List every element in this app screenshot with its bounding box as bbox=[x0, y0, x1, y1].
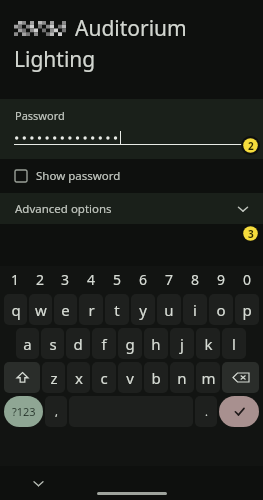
button[interactable]: Backspace bbox=[222, 362, 259, 393]
button[interactable]: 9 bbox=[208, 266, 234, 292]
button[interactable]: Enter bbox=[219, 396, 259, 427]
button[interactable]: 7 bbox=[156, 266, 182, 292]
staticText: r bbox=[88, 300, 95, 320]
staticText: e bbox=[61, 300, 70, 320]
button[interactable]: n bbox=[170, 362, 194, 393]
button[interactable]: Hide keyboard bbox=[30, 475, 46, 491]
button[interactable]: u bbox=[157, 294, 181, 325]
button[interactable]: 6 bbox=[130, 266, 156, 292]
button[interactable]: g bbox=[118, 328, 142, 359]
staticText: s bbox=[49, 334, 57, 354]
staticText: t bbox=[114, 300, 120, 320]
button[interactable]: 4 bbox=[78, 266, 104, 292]
staticText: m bbox=[201, 368, 216, 388]
staticText: x bbox=[75, 368, 83, 388]
button[interactable]: w bbox=[29, 294, 52, 325]
button[interactable]: t bbox=[105, 294, 129, 325]
button[interactable]: c bbox=[92, 362, 116, 393]
button[interactable]: k bbox=[196, 328, 220, 359]
staticText: g bbox=[125, 334, 135, 354]
staticText: q bbox=[11, 300, 21, 320]
button[interactable]: 1 bbox=[3, 266, 28, 292]
staticText: Advanced options bbox=[15, 201, 112, 217]
staticText: Show password bbox=[36, 168, 121, 184]
staticText: n bbox=[177, 368, 187, 388]
button[interactable]: r bbox=[79, 294, 103, 325]
staticText: Password bbox=[15, 108, 65, 123]
staticText: a bbox=[23, 334, 32, 354]
staticText: . bbox=[205, 404, 208, 419]
button[interactable]: x bbox=[67, 362, 90, 393]
staticText: p bbox=[242, 300, 252, 320]
button[interactable]: 2 bbox=[28, 266, 53, 292]
staticText: 5 bbox=[113, 270, 122, 289]
staticText: o bbox=[216, 300, 226, 320]
button[interactable]: Advanced options bbox=[0, 193, 263, 224]
staticText: h bbox=[151, 334, 161, 354]
staticText: Auditorium bbox=[75, 14, 187, 43]
staticText: , bbox=[55, 404, 58, 419]
staticText: Lighting bbox=[14, 45, 96, 74]
staticText: v bbox=[126, 368, 134, 388]
button[interactable]: s bbox=[41, 328, 64, 359]
staticText: 4 bbox=[87, 270, 96, 289]
button[interactable]: d bbox=[66, 328, 90, 359]
button[interactable]: 5 bbox=[104, 266, 130, 292]
staticText: i bbox=[193, 300, 197, 320]
button[interactable]: q bbox=[4, 294, 27, 325]
staticText: f bbox=[101, 334, 107, 354]
button[interactable]: a bbox=[16, 328, 39, 359]
staticText: 3 bbox=[248, 227, 254, 241]
button[interactable]: Show password bbox=[0, 159, 263, 193]
button[interactable]: y bbox=[131, 294, 155, 325]
button[interactable]: . bbox=[195, 396, 217, 427]
staticText: l bbox=[232, 334, 236, 354]
staticText: j bbox=[180, 334, 184, 354]
button[interactable]: j bbox=[170, 328, 194, 359]
staticText: c bbox=[100, 368, 108, 388]
staticText: 7 bbox=[165, 270, 174, 289]
button[interactable]: Shift bbox=[4, 362, 40, 393]
button[interactable]: v bbox=[118, 362, 142, 393]
staticText: 3 bbox=[61, 270, 70, 289]
button[interactable]: l bbox=[222, 328, 246, 359]
staticText: 2 bbox=[248, 139, 254, 153]
staticText: 8 bbox=[191, 270, 200, 289]
button[interactable]: b bbox=[144, 362, 168, 393]
button[interactable]: h bbox=[144, 328, 168, 359]
button[interactable]: e bbox=[54, 294, 77, 325]
staticText: 2 bbox=[36, 270, 45, 289]
button[interactable]: f bbox=[92, 328, 116, 359]
staticText: y bbox=[139, 300, 147, 320]
button[interactable]: 3 bbox=[53, 266, 78, 292]
staticText: 1 bbox=[11, 270, 20, 289]
button[interactable]: 0 bbox=[234, 266, 260, 292]
button[interactable]: , bbox=[45, 396, 67, 427]
button[interactable]: m bbox=[196, 362, 220, 393]
staticText: d bbox=[73, 334, 83, 354]
staticText: 0 bbox=[243, 270, 252, 289]
button[interactable]: o bbox=[209, 294, 233, 325]
button[interactable]: p bbox=[235, 294, 259, 325]
staticText: u bbox=[164, 300, 174, 320]
button[interactable]: 8 bbox=[182, 266, 208, 292]
staticText: 6 bbox=[139, 270, 148, 289]
button[interactable]: i bbox=[183, 294, 207, 325]
button[interactable]: ?123 bbox=[4, 396, 43, 427]
staticText: w bbox=[35, 300, 47, 320]
button[interactable]: z bbox=[42, 362, 65, 393]
staticText: k bbox=[204, 334, 213, 354]
staticText: 9 bbox=[217, 270, 226, 289]
staticText: ?123 bbox=[12, 404, 36, 419]
staticText: z bbox=[50, 368, 58, 388]
staticText: b bbox=[151, 368, 161, 388]
